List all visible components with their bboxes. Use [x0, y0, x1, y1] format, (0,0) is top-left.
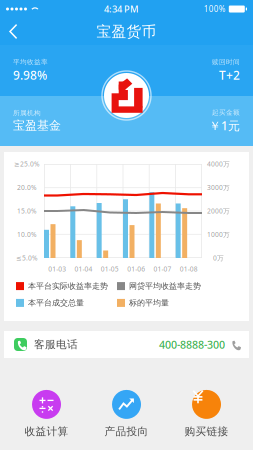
staticText: 1000万 [207, 230, 230, 239]
button[interactable]: 收益计算 [6, 390, 86, 438]
staticText: 4:34 PM [104, 3, 139, 15]
staticText: 4000万 [207, 160, 230, 168]
staticText: 10.0% [17, 230, 37, 239]
staticText: ≤5.0% [16, 254, 38, 262]
staticText: 起买金额 [212, 108, 240, 117]
staticText: 01-03 [48, 265, 66, 273]
staticText: 本平台实际收益率走势 [28, 281, 108, 291]
staticText: 100% [204, 4, 226, 14]
staticText: 标的平均量 [129, 298, 169, 308]
staticText: 01-05 [101, 265, 119, 273]
staticText: 购买链接 [184, 425, 228, 438]
staticText: 3000万 [207, 183, 230, 192]
staticText: 本平台成交总量 [28, 298, 84, 308]
staticText: 赎回时间 [212, 58, 240, 66]
staticText: ￥1元 [209, 118, 240, 133]
staticText: 01-04 [74, 265, 92, 273]
staticText: 01-06 [127, 265, 145, 273]
staticText: 产品投向 [104, 425, 148, 438]
staticText: T+2 [219, 67, 240, 83]
staticText: 宝盈货币 [96, 22, 156, 40]
staticText: 平均收益率 [13, 58, 48, 66]
staticText: 网贷平均收益率走势 [129, 281, 201, 291]
staticText: 客服电话 [34, 338, 78, 351]
staticText: 0万 [213, 254, 224, 262]
staticText: 所属机构 [13, 109, 41, 117]
button[interactable]: 客服电话 [4, 331, 249, 358]
staticText: 20.0% [17, 183, 37, 192]
button[interactable]: 购买链接 [166, 390, 246, 438]
staticText: 01-07 [153, 265, 171, 273]
staticText: 15.0% [17, 207, 37, 215]
button[interactable]: 产品投向 [86, 390, 166, 438]
staticText: 收益计算 [24, 425, 68, 438]
staticText: 宝盈基金 [13, 118, 61, 133]
staticText: 400-8888-300 [159, 337, 225, 352]
staticText: 9.98% [13, 67, 47, 83]
staticText: 01-08 [180, 265, 198, 273]
staticText: 2000万 [207, 207, 230, 215]
button[interactable]: Back [0, 18, 30, 45]
staticText: ≥25.0% [14, 160, 40, 168]
